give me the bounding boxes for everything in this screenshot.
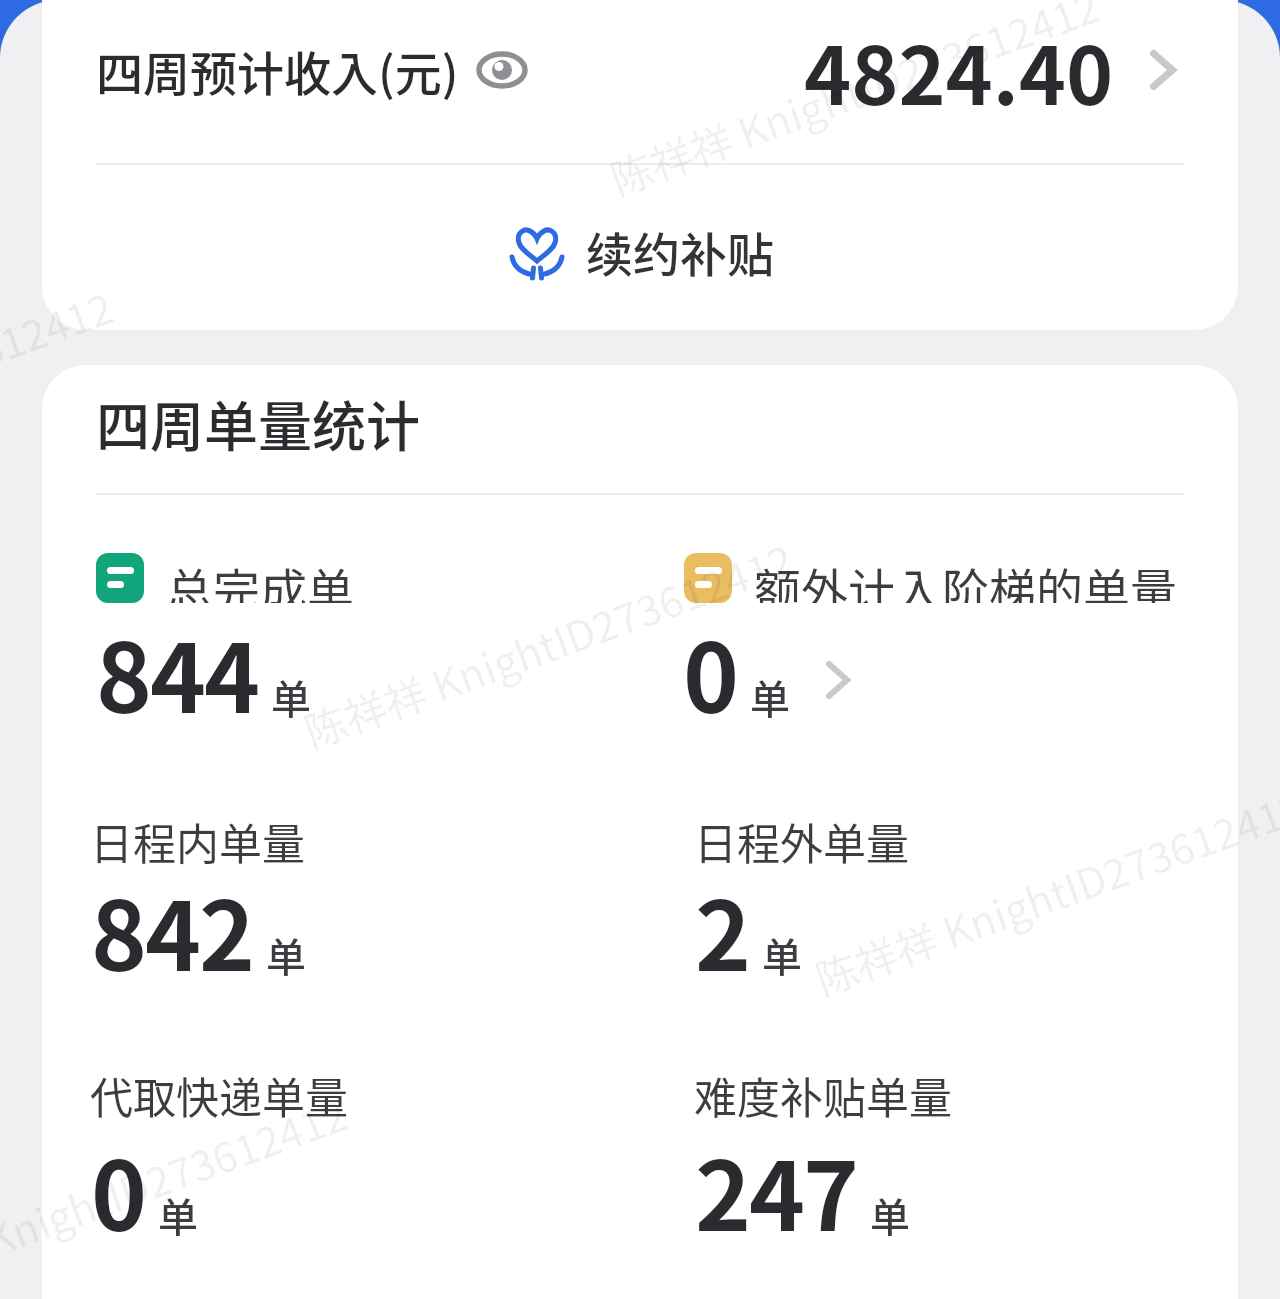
staticText: 0 <box>91 1121 146 1259</box>
staticText: 额外计入阶梯的单量 <box>754 553 1177 603</box>
staticText: 4824.40 <box>804 12 1114 128</box>
staticText: 四周预计收入(元) <box>96 36 459 104</box>
staticText: 陈祥祥 KnightID273612412 <box>0 275 121 508</box>
staticText: 单 <box>762 926 802 984</box>
staticText: 0 <box>683 603 738 741</box>
staticText: 844 <box>96 603 259 741</box>
staticText: 单 <box>271 668 311 726</box>
staticText: 难度补贴单量 <box>694 1064 952 1126</box>
staticText: 陈祥祥 KnightID273612412 <box>601 0 1107 207</box>
staticText: 单 <box>158 1186 198 1244</box>
staticText: 陈祥祥 KnightID273612412 <box>806 774 1280 1007</box>
staticText: 代取快递单量 <box>90 1064 348 1126</box>
staticText: 247 <box>695 1121 858 1259</box>
staticText: 陈祥祥 KnightID273612412 <box>0 1082 355 1299</box>
staticText: 2 <box>695 861 750 999</box>
staticText: 四周单量统计 <box>96 384 420 462</box>
button[interactable]: 额外计入阶梯的单量 <box>684 553 1177 603</box>
staticText: 日程内单量 <box>90 810 305 872</box>
staticText: 日程外单量 <box>694 810 909 872</box>
button[interactable]: 0 <box>683 603 850 741</box>
staticText: 单 <box>870 1186 910 1244</box>
button[interactable]: 续约补贴 <box>507 215 774 287</box>
staticText: 单 <box>266 926 306 984</box>
staticText: 总完成单 <box>166 553 354 603</box>
button[interactable]: 四周预计收入(元) <box>96 0 1176 140</box>
staticText: 842 <box>91 861 254 999</box>
staticText: 单 <box>750 668 790 726</box>
staticText: 陈祥祥 KnightID273612412 <box>295 527 801 760</box>
staticText: 续约补贴 <box>586 217 774 285</box>
